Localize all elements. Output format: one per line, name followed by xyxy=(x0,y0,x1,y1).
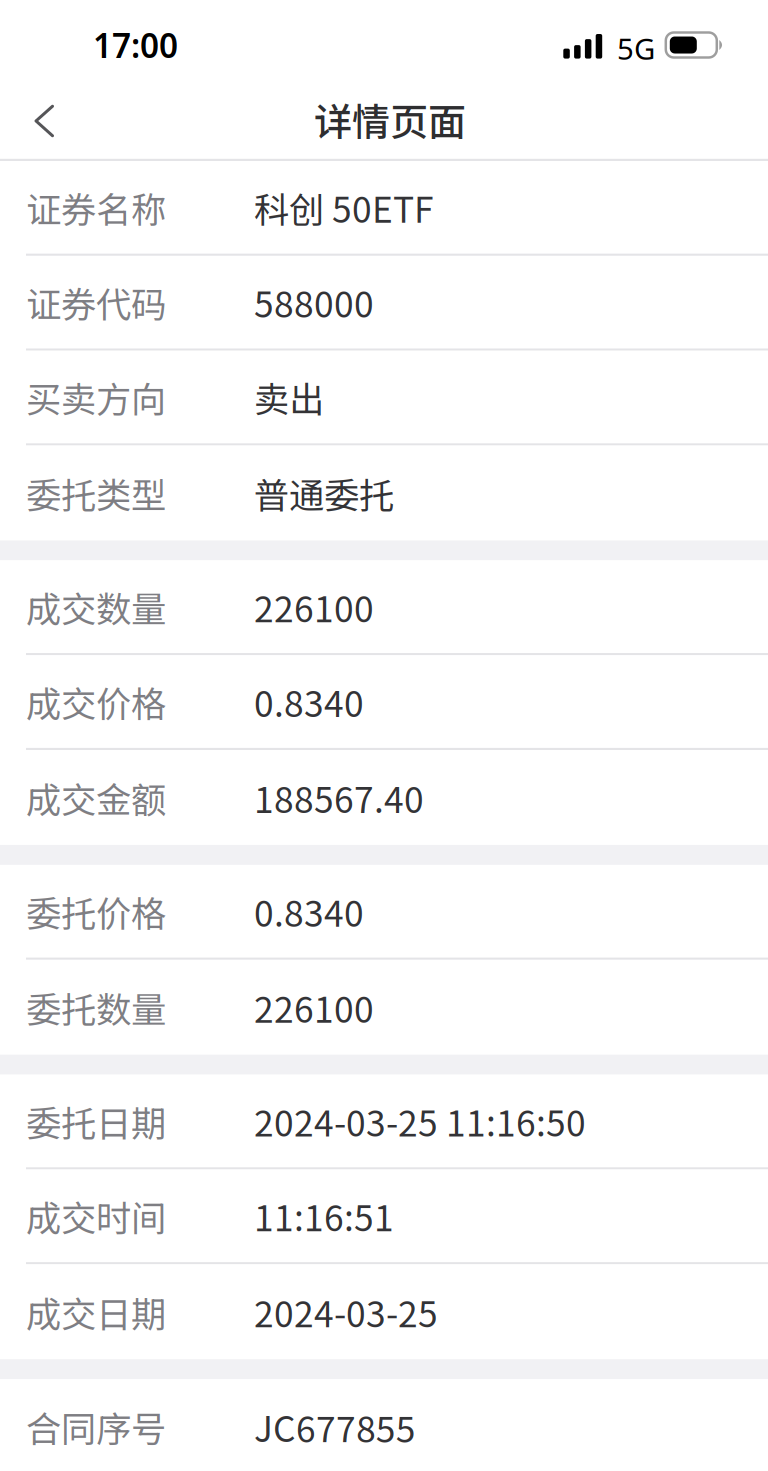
staticText: 成交时间 xyxy=(26,1190,166,1241)
staticText: 证券名称 xyxy=(26,182,166,233)
button[interactable]: 合同序号 xyxy=(0,1379,768,1471)
staticText: 0.8340 xyxy=(254,886,364,937)
staticText: 合同序号 xyxy=(26,1401,166,1452)
button[interactable]: 委托价格 xyxy=(0,865,768,960)
staticText: 226100 xyxy=(254,982,374,1033)
staticText: 普通委托 xyxy=(254,467,394,519)
staticText: 588000 xyxy=(254,277,374,328)
button[interactable]: 委托数量 xyxy=(0,960,768,1055)
button[interactable]: 委托日期 xyxy=(0,1075,768,1169)
staticText: 188567.40 xyxy=(254,772,424,823)
staticText: 委托价格 xyxy=(26,886,166,937)
staticText: 成交价格 xyxy=(26,676,166,727)
button[interactable]: 证券名称 xyxy=(0,161,768,256)
button[interactable]: 证券代码 xyxy=(0,256,768,351)
staticText: 科创 50ETF xyxy=(254,182,434,233)
staticText: 卖出 xyxy=(254,371,324,423)
staticText: 成交日期 xyxy=(26,1286,166,1337)
button[interactable]: 成交时间 xyxy=(0,1169,768,1264)
button[interactable]: 成交日期 xyxy=(0,1264,768,1359)
staticText: 买卖方向 xyxy=(26,371,166,423)
button[interactable]: 委托类型 xyxy=(0,445,768,540)
staticText: 11:16:51 xyxy=(254,1190,394,1241)
staticText: 委托类型 xyxy=(26,467,166,519)
button[interactable]: 成交金额 xyxy=(0,750,768,845)
button[interactable]: 成交数量 xyxy=(0,560,768,655)
staticText: JC677855 xyxy=(254,1401,416,1452)
staticText: 2024-03-25 11:16:50 xyxy=(254,1095,586,1147)
staticText: 详情页面 xyxy=(314,92,466,147)
staticText: 成交数量 xyxy=(26,581,166,632)
staticText: 委托日期 xyxy=(26,1095,166,1147)
staticText: 226100 xyxy=(254,581,374,632)
staticText: 2024-03-25 xyxy=(254,1286,438,1337)
staticText: 委托数量 xyxy=(26,982,166,1033)
staticText: 0.8340 xyxy=(254,676,364,727)
staticText: 5G xyxy=(617,29,655,68)
staticText: 成交金额 xyxy=(26,772,166,823)
button[interactable]: 成交价格 xyxy=(0,655,768,750)
staticText: 证券代码 xyxy=(26,277,166,328)
button[interactable]: 返回 xyxy=(10,89,76,155)
button[interactable]: 买卖方向 xyxy=(0,351,768,445)
staticText: 17:00 xyxy=(93,23,178,67)
